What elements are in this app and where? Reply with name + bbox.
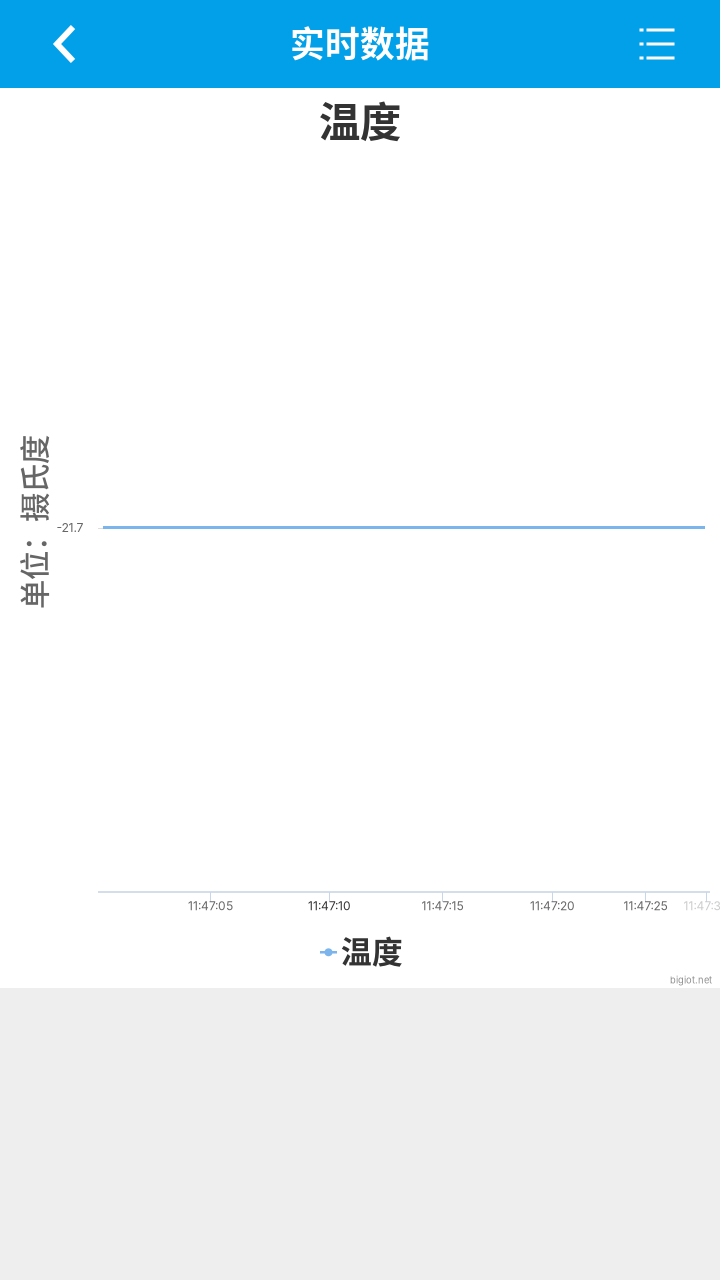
staticText: 11:47:10 [308,899,351,913]
button[interactable]: Back [0,0,130,88]
staticText: 11:47:05 [188,899,233,913]
staticText: 温度 [341,928,403,972]
staticText: 单位：摄氏度 [0,501,120,543]
staticText: bigiot.net [670,974,712,986]
staticText: 温度 [319,89,401,149]
staticText: -21.7 [56,520,83,535]
button[interactable]: Menu [594,0,720,88]
staticText: 11:47:30 [683,899,720,913]
staticText: 实时数据 [290,17,430,67]
staticText: 11:47:15 [421,899,463,913]
staticText: 11:47:25 [623,899,667,913]
staticText: 11:47:20 [530,899,575,913]
